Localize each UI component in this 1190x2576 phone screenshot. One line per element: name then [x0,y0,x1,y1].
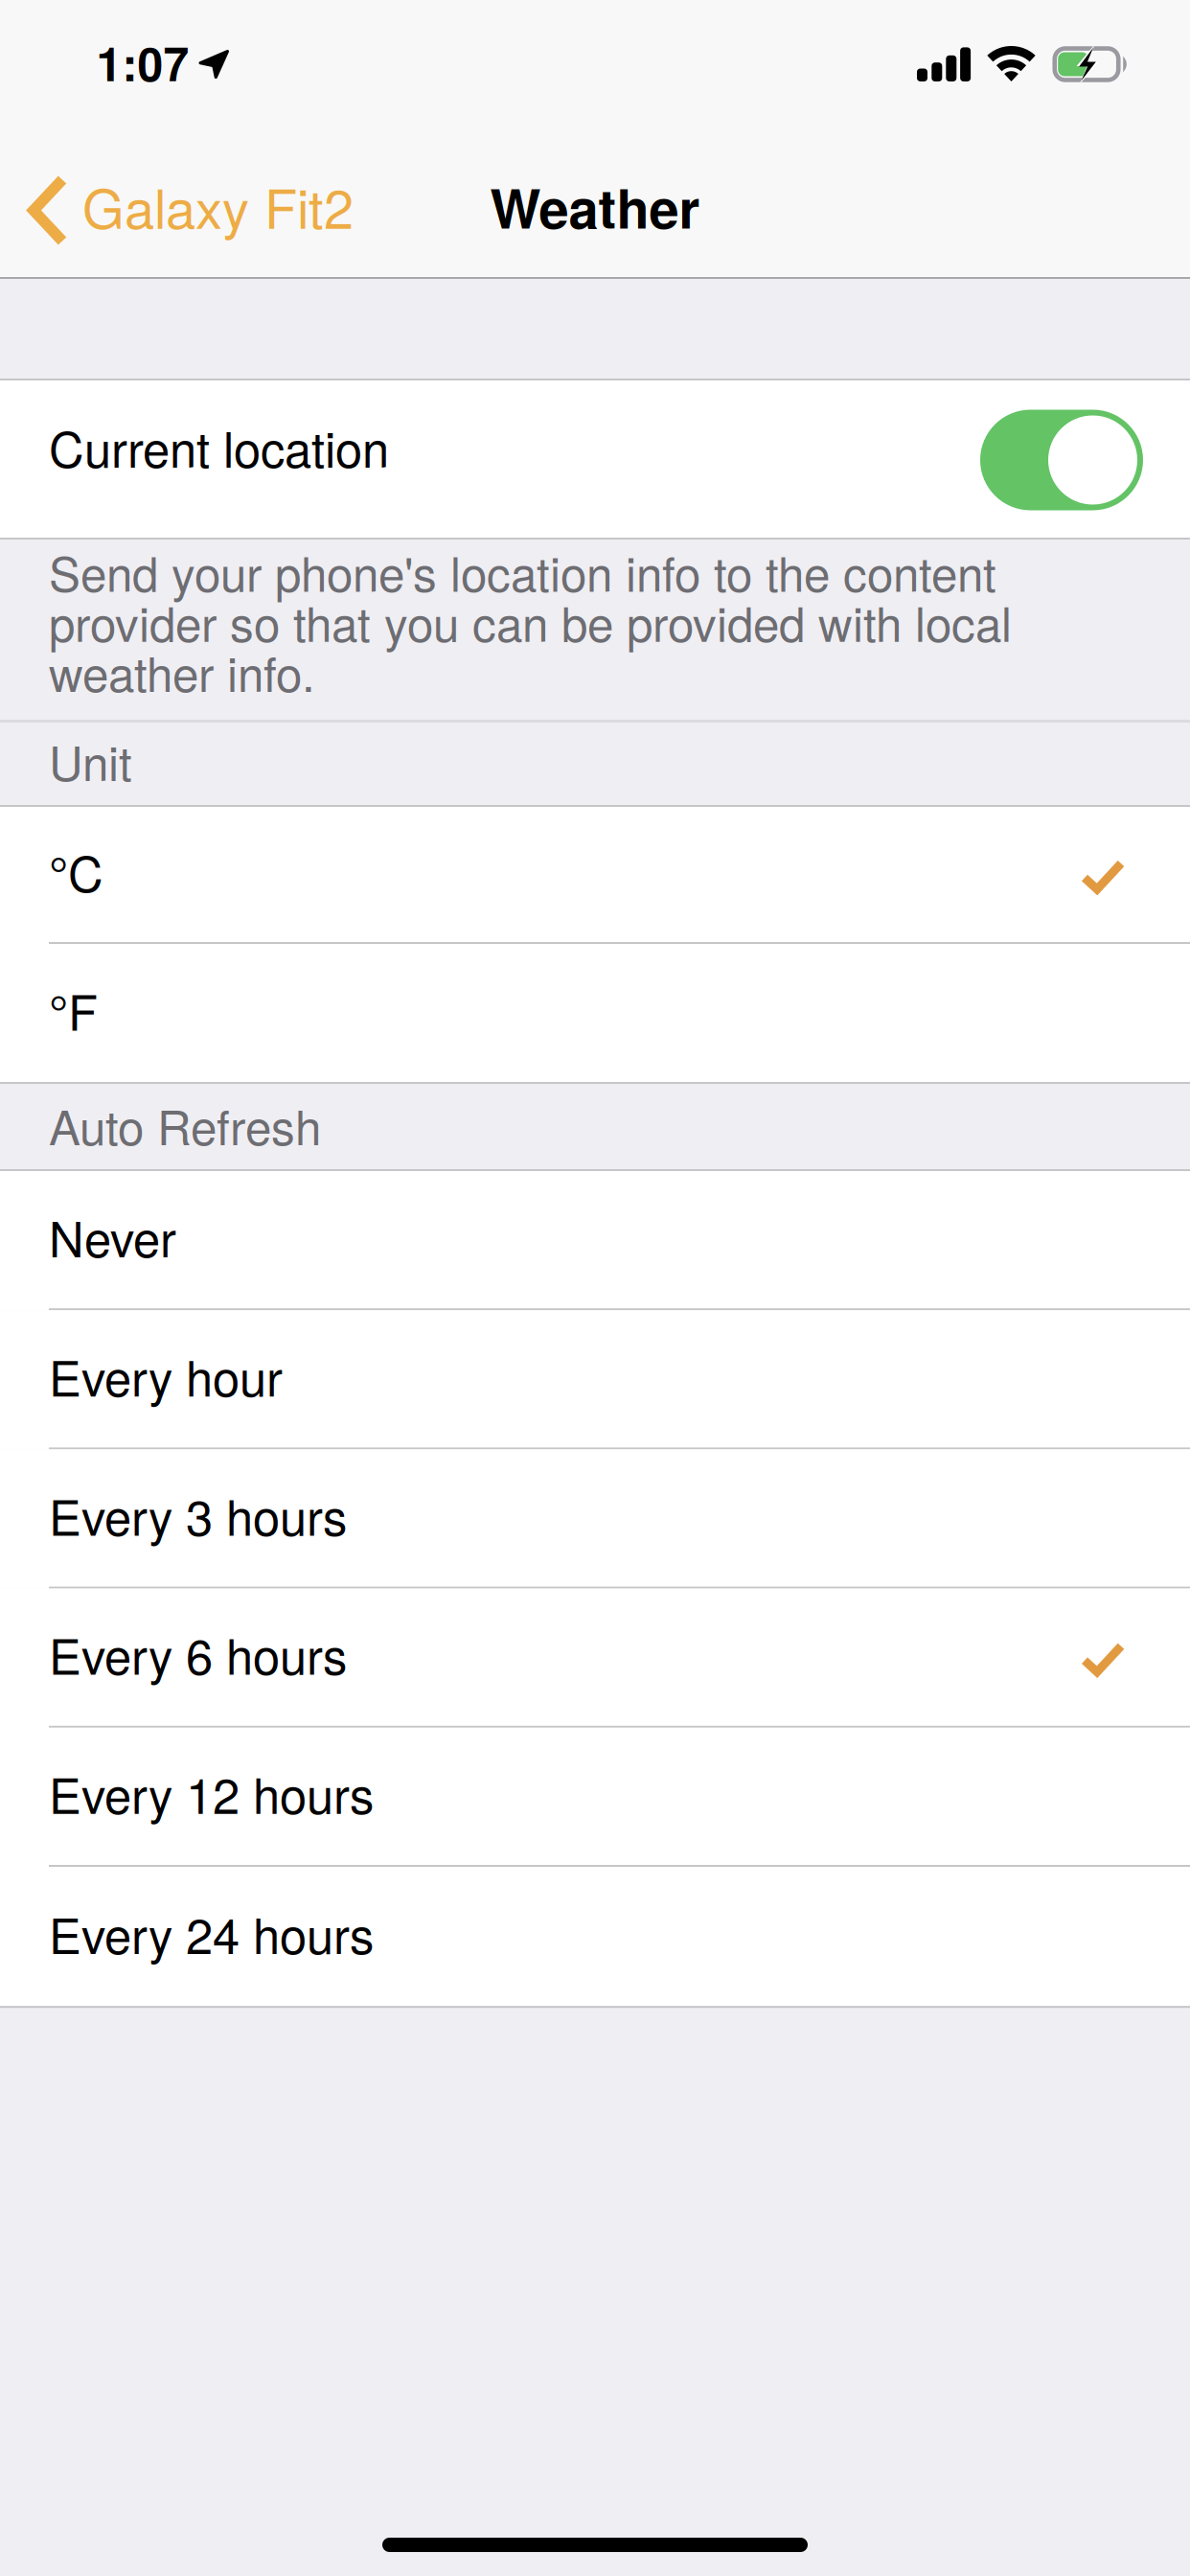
staticText: Every 6 hours [49,1619,347,1689]
button[interactable]: Current location [980,410,1143,510]
button[interactable]: Galaxy Fit2 [0,134,373,287]
button[interactable]: °F [0,944,1190,1082]
staticText: Never [49,1202,176,1271]
staticText: °C [49,836,103,906]
button[interactable]: Every 3 hours [0,1449,1190,1589]
button[interactable]: Every 24 hours [0,1867,1190,2006]
staticText: Every 24 hours [49,1898,374,1968]
staticText: °F [49,975,98,1044]
staticText: Auto Refresh [49,1091,321,1159]
staticText: 1:07 [96,29,189,95]
staticText: Galaxy Fit2 [82,167,354,244]
staticText: Every hour [49,1341,283,1410]
button[interactable]: Every 12 hours [0,1728,1190,1867]
staticText: Every 3 hours [49,1480,347,1549]
staticText: Unit [49,727,132,794]
staticText: Send your phone's location info to the c… [49,546,1012,697]
button[interactable]: °C [0,807,1190,944]
button[interactable]: Every hour [0,1310,1190,1449]
button[interactable]: Every 6 hours [0,1589,1190,1728]
staticText: Current location [49,412,389,481]
staticText: Every 12 hours [49,1758,374,1828]
staticText: Weather [490,168,700,245]
button[interactable]: Never [0,1171,1190,1310]
